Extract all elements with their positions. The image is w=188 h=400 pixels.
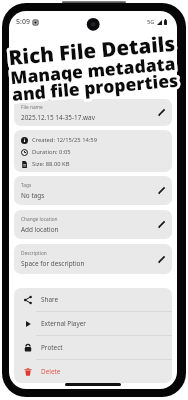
staticText: Manage metadata <box>9 51 177 89</box>
staticText: Share <box>41 295 59 304</box>
staticText: and file properties <box>11 68 179 106</box>
button[interactable]: Delete <box>14 360 172 383</box>
staticText: No tags <box>21 191 45 200</box>
staticText: Description <box>21 250 47 257</box>
button[interactable]: Share <box>14 288 172 311</box>
staticText: File name <box>21 104 43 111</box>
button[interactable]: Edit File name <box>155 106 168 119</box>
button[interactable]: Tags <box>14 176 172 205</box>
button[interactable]: Change location <box>14 210 172 239</box>
button[interactable]: Edit Change location <box>155 218 168 231</box>
staticText: Rich File Details <box>7 29 176 71</box>
button[interactable]: Edit Tags <box>155 184 168 197</box>
staticText: Rich File Details <box>7 29 176 71</box>
button[interactable]: External Player <box>14 312 172 335</box>
staticText: and file properties <box>11 68 179 106</box>
staticText: 5:09 <box>16 17 30 27</box>
button[interactable]: Edit Description <box>155 253 168 266</box>
button[interactable]: File name <box>14 99 172 126</box>
button[interactable]: Description <box>14 244 172 274</box>
staticText: Delete <box>41 367 61 376</box>
staticText: External Player <box>41 319 86 328</box>
staticText: Protect <box>41 343 63 352</box>
staticText: Add location <box>21 225 59 234</box>
staticText: Created: 12/15/25 14:59 <box>32 136 97 144</box>
staticText: Tags <box>21 182 32 189</box>
staticText: 5G <box>147 18 155 26</box>
staticText: Manage metadata <box>9 51 177 89</box>
button[interactable]: Protect <box>14 336 172 359</box>
staticText: Duration: 0:05 <box>32 148 71 156</box>
staticText: Space for description <box>21 259 85 268</box>
staticText: Size: 88.00 KB <box>32 160 70 168</box>
staticText: Change location <box>21 216 58 223</box>
staticText: 2025.12.15 14-35-17.wav <box>21 113 95 122</box>
